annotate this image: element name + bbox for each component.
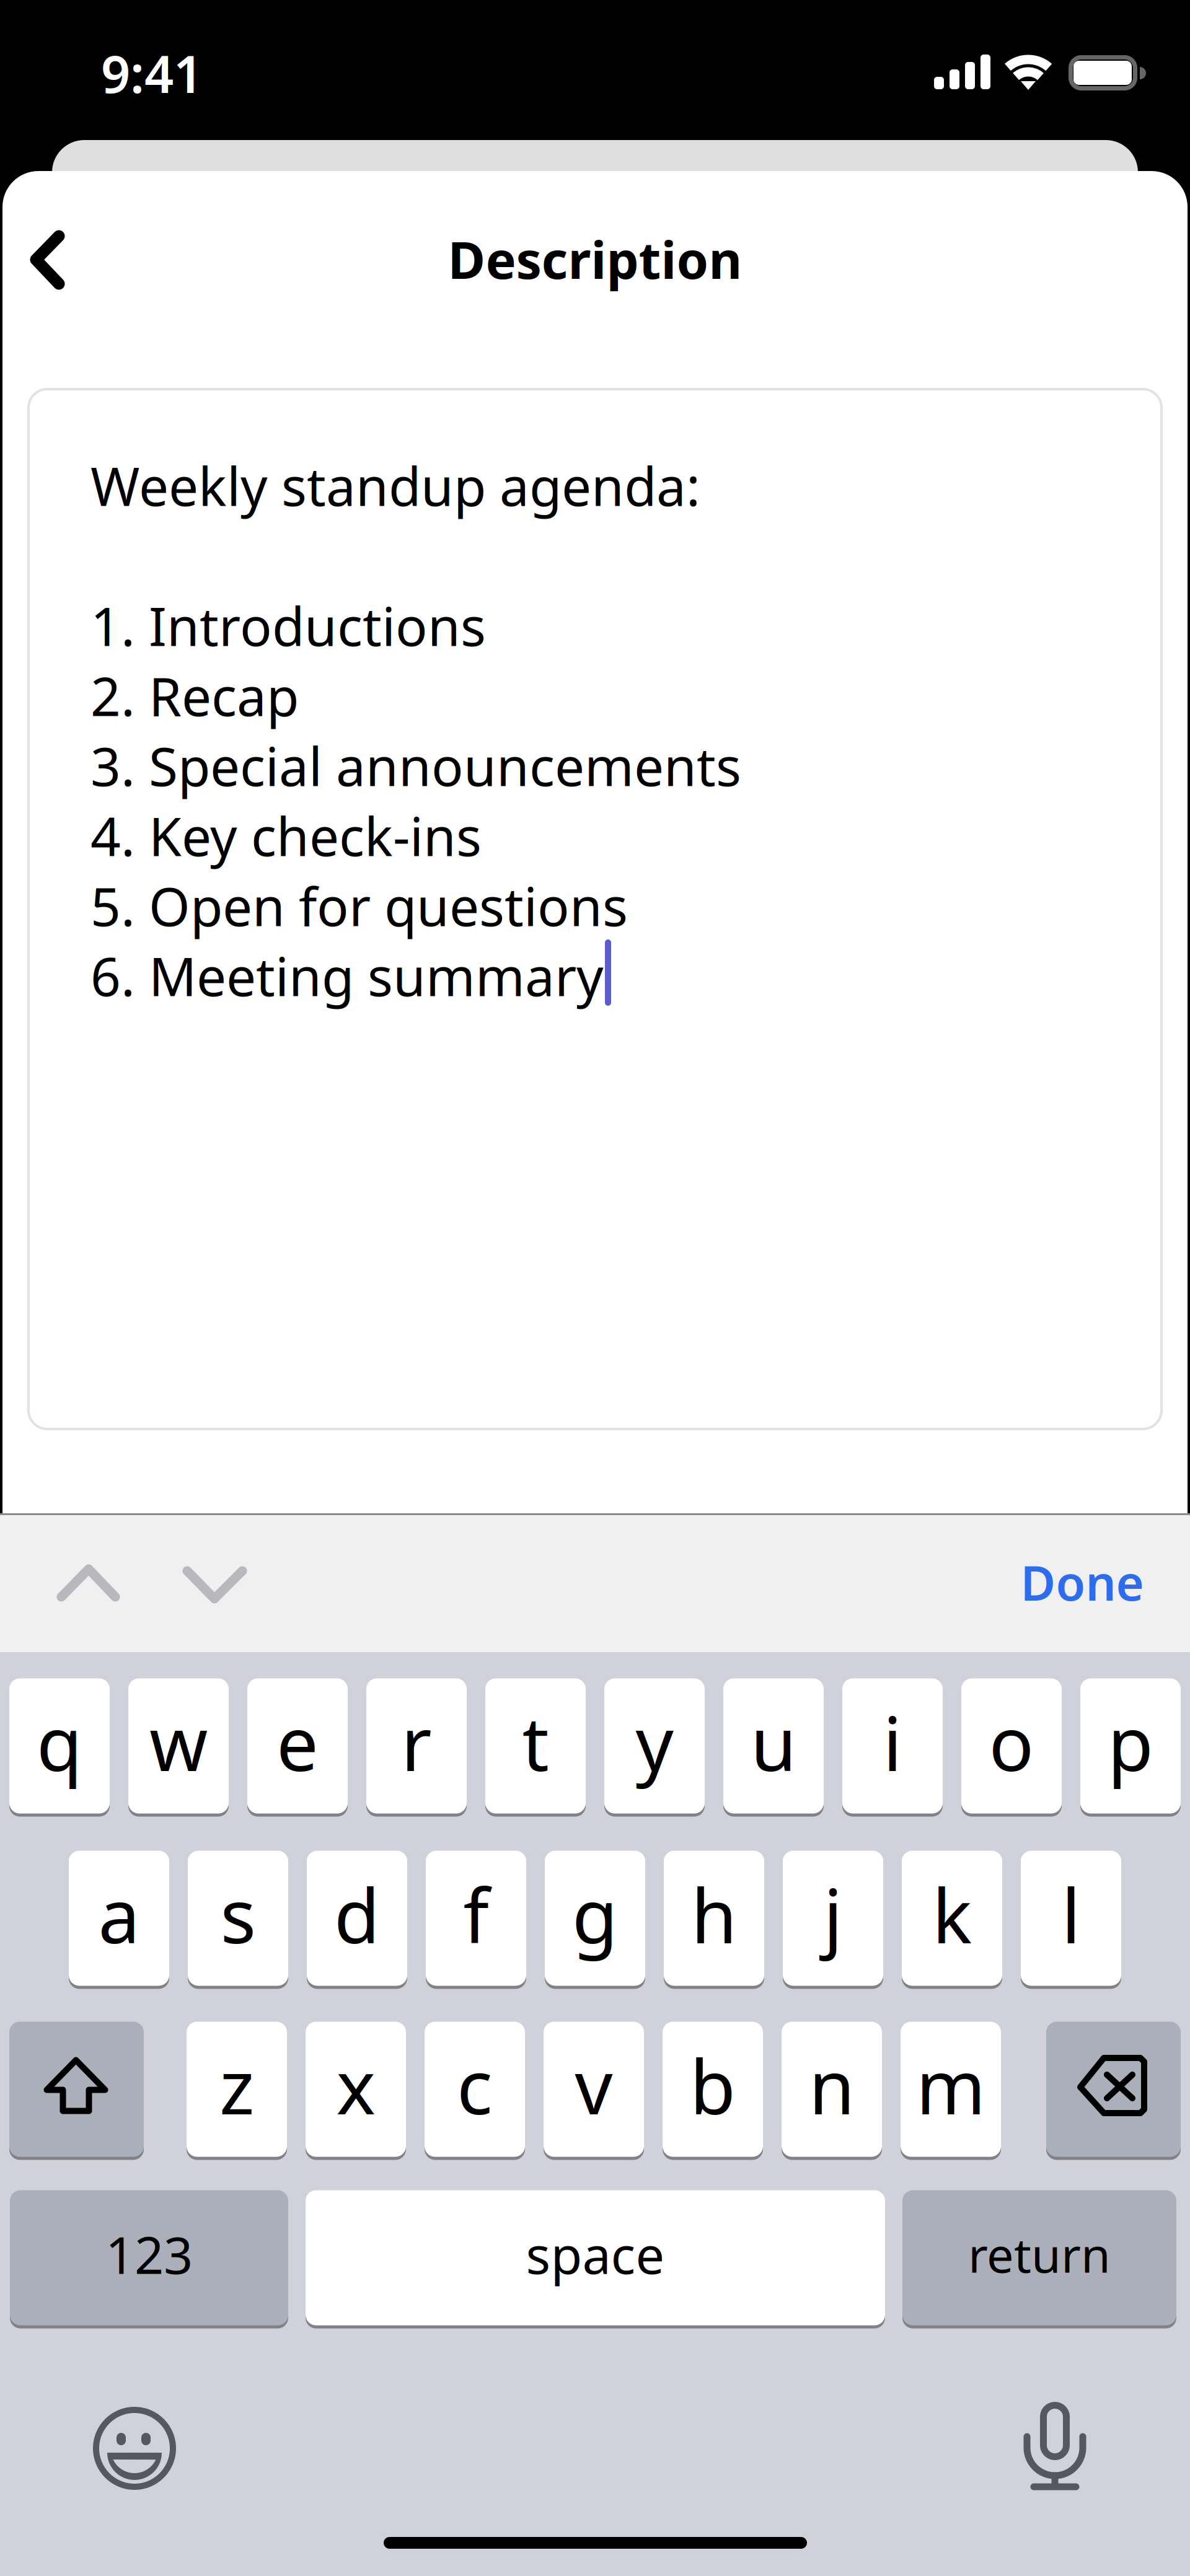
button[interactable]: o bbox=[961, 1677, 1062, 1815]
button[interactable]: Delete bbox=[1046, 2020, 1181, 2158]
button[interactable]: g bbox=[545, 1849, 645, 1987]
button[interactable]: r bbox=[366, 1677, 467, 1815]
staticText: s bbox=[220, 1865, 256, 1964]
staticText: x bbox=[336, 2036, 375, 2135]
staticText: u bbox=[751, 1693, 796, 1792]
button[interactable]: d bbox=[307, 1849, 407, 1987]
staticText: b bbox=[690, 2036, 736, 2135]
button[interactable]: Done bbox=[995, 1532, 1169, 1632]
staticText: h bbox=[691, 1865, 737, 1964]
button[interactable]: s bbox=[188, 1849, 288, 1987]
staticText: 4. Key check-ins bbox=[90, 800, 482, 871]
staticText: 2. Recap bbox=[90, 660, 299, 731]
staticText: q bbox=[37, 1693, 82, 1792]
button[interactable]: l bbox=[1021, 1849, 1121, 1987]
button[interactable]: Shift bbox=[9, 2020, 144, 2158]
button[interactable]: m bbox=[901, 2020, 1001, 2158]
staticText: d bbox=[334, 1865, 380, 1964]
staticText: o bbox=[989, 1693, 1034, 1792]
staticText: y bbox=[636, 1693, 673, 1792]
button[interactable]: j bbox=[783, 1849, 883, 1987]
staticText: 3. Special announcements bbox=[90, 730, 741, 801]
button[interactable]: k bbox=[902, 1849, 1002, 1987]
button[interactable]: Back bbox=[10, 215, 97, 305]
button[interactable]: z bbox=[187, 2020, 287, 2158]
button[interactable]: y bbox=[604, 1677, 705, 1815]
button[interactable]: Previous field bbox=[39, 1515, 138, 1614]
button[interactable]: t bbox=[485, 1677, 586, 1815]
staticText: r bbox=[401, 1693, 432, 1792]
staticText: v bbox=[575, 2036, 613, 2135]
staticText: 5. Open for questions bbox=[90, 871, 628, 941]
button[interactable]: h bbox=[664, 1849, 764, 1987]
button[interactable]: return bbox=[902, 2189, 1176, 2327]
button[interactable]: b bbox=[663, 2020, 763, 2158]
staticText: m bbox=[916, 2036, 985, 2135]
button[interactable]: w bbox=[128, 1677, 229, 1815]
button[interactable]: u bbox=[723, 1677, 824, 1815]
staticText: 123 bbox=[105, 2220, 193, 2288]
button[interactable]: p bbox=[1080, 1677, 1181, 1815]
staticText: p bbox=[1108, 1693, 1153, 1792]
staticText: k bbox=[932, 1865, 972, 1964]
staticText: 9:41 bbox=[101, 39, 203, 107]
staticText: space bbox=[526, 2220, 665, 2288]
button[interactable]: i bbox=[842, 1677, 943, 1815]
staticText: Weekly standup agenda: bbox=[90, 450, 700, 521]
staticText: n bbox=[809, 2036, 855, 2135]
staticText: Done bbox=[1020, 1550, 1144, 1614]
button[interactable]: f bbox=[426, 1849, 526, 1987]
button[interactable]: v bbox=[544, 2020, 644, 2158]
staticText: l bbox=[1061, 1865, 1081, 1964]
staticText: w bbox=[149, 1693, 208, 1792]
button[interactable]: a bbox=[69, 1849, 169, 1987]
button[interactable]: e bbox=[247, 1677, 348, 1815]
button[interactable]: 123 bbox=[10, 2189, 288, 2327]
button[interactable]: space bbox=[306, 2189, 885, 2327]
button[interactable]: x bbox=[306, 2020, 406, 2158]
button[interactable]: n bbox=[782, 2020, 882, 2158]
button[interactable]: Next field bbox=[165, 1515, 264, 1614]
staticText: a bbox=[98, 1865, 140, 1964]
staticText: c bbox=[457, 2036, 493, 2135]
button[interactable]: q bbox=[9, 1677, 110, 1815]
button[interactable]: c bbox=[425, 2020, 525, 2158]
staticText: 1. Introductions bbox=[90, 590, 486, 661]
button[interactable]: Dictation bbox=[1023, 2402, 1086, 2490]
staticText: j bbox=[823, 1865, 843, 1964]
staticText: g bbox=[572, 1865, 618, 1964]
staticText: i bbox=[883, 1693, 902, 1792]
staticText: t bbox=[522, 1693, 549, 1792]
button[interactable]: Emoji bbox=[93, 2406, 176, 2490]
staticText: z bbox=[219, 2036, 254, 2135]
staticText: return bbox=[968, 2222, 1111, 2286]
staticText: Description bbox=[448, 225, 742, 293]
staticText: e bbox=[276, 1693, 319, 1792]
staticText: f bbox=[463, 1865, 489, 1964]
staticText: 6. Meeting summary bbox=[90, 941, 604, 1011]
